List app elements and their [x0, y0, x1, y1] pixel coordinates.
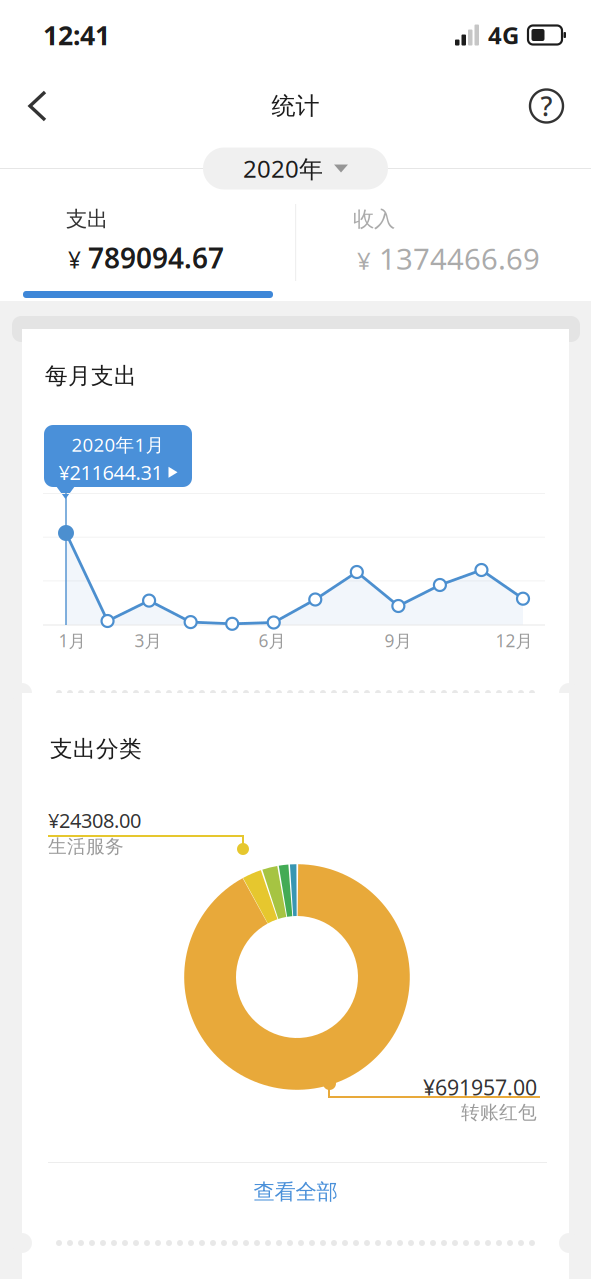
staticText: 4G [488, 19, 519, 51]
staticText: 2020年 [243, 153, 323, 184]
staticText: 2020年1月 [71, 432, 164, 457]
button[interactable]: 2020年 [203, 147, 388, 189]
staticText: 支出 [66, 206, 108, 232]
staticText: 1374466.69 [379, 239, 540, 278]
staticText: 789094.67 [88, 239, 224, 276]
button[interactable]: Back [0, 76, 69, 136]
button[interactable]: 查看全部 [22, 1162, 569, 1222]
staticText: 生活服务 [48, 835, 124, 858]
button[interactable]: 收入 [0, 195, 296, 301]
staticText: 转账红包 [461, 1101, 537, 1124]
staticText: ¥24308.00 [48, 807, 141, 834]
staticText: 支出分类 [50, 735, 142, 763]
staticText: 收入 [353, 206, 395, 232]
staticText: ¥211644.31 [58, 459, 162, 486]
staticText: 查看全部 [253, 1179, 337, 1205]
staticText: ¥691957.00 [423, 1073, 537, 1101]
button[interactable]: 支出 [0, 195, 295, 301]
button[interactable]: Help [506, 72, 591, 140]
staticText: ¥ [68, 245, 81, 275]
staticText: 每月支出 [45, 362, 137, 390]
staticText: 12月 [495, 629, 532, 652]
staticText: 6月 [258, 629, 285, 652]
staticText: 12:41 [43, 17, 110, 53]
staticText: 1月 [58, 629, 85, 652]
staticText: ? [540, 88, 552, 124]
staticText: 统计 [271, 91, 319, 121]
staticText: ¥ [357, 245, 371, 276]
staticText: 9月 [384, 629, 411, 652]
staticText: 3月 [134, 629, 161, 652]
